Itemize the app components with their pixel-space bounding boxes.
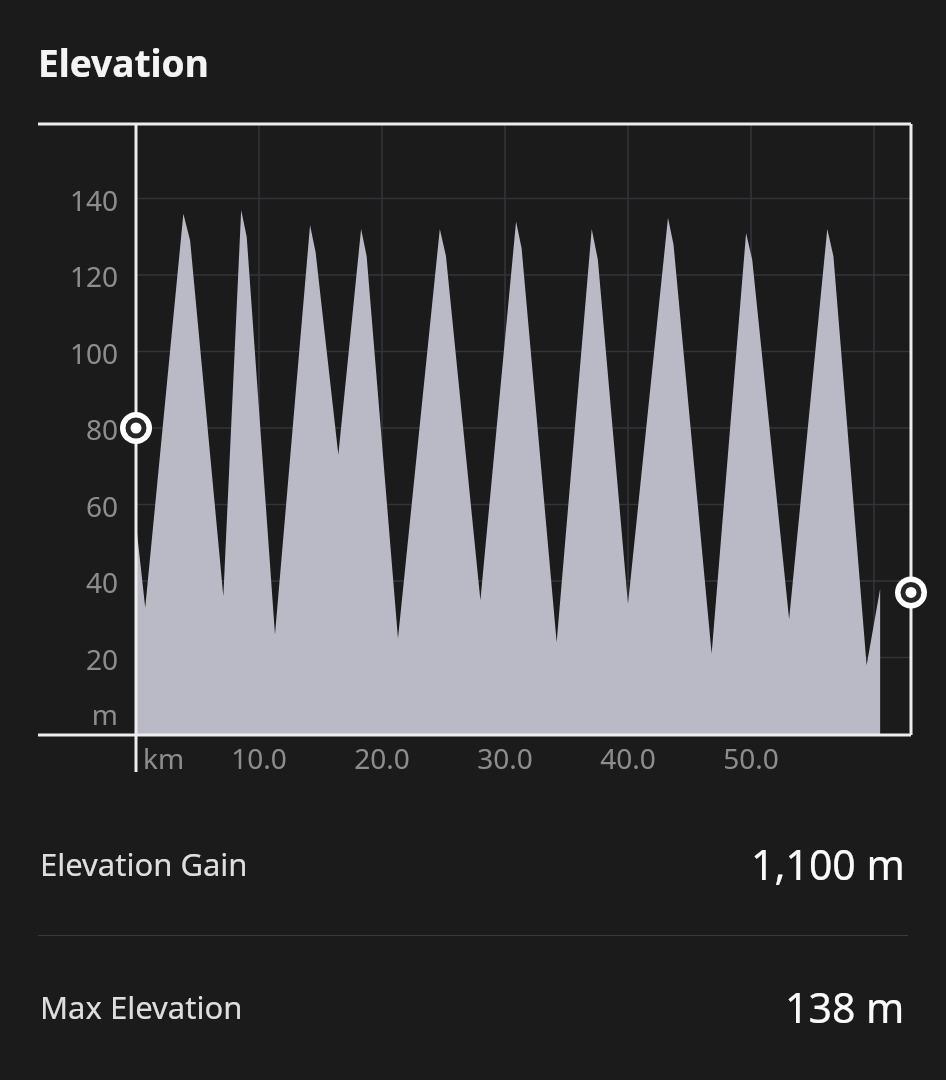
- staticText: 10.0: [199, 739, 319, 777]
- staticText: km: [143, 739, 185, 777]
- staticText: 120: [40, 257, 118, 295]
- staticText: 50.0: [691, 739, 811, 777]
- button[interactable]: Elevation Gain: [0, 793, 946, 935]
- staticText: 20: [40, 640, 118, 678]
- staticText: 30.0: [445, 739, 565, 777]
- staticText: 40.0: [568, 739, 688, 777]
- staticText: 40: [40, 563, 118, 601]
- staticText: m: [40, 695, 118, 733]
- staticText: 140: [40, 181, 118, 219]
- staticText: Elevation Gain: [40, 843, 248, 885]
- staticText: 100: [40, 334, 118, 372]
- staticText: 20.0: [322, 739, 442, 777]
- staticText: 138 m: [785, 979, 905, 1035]
- staticText: Elevation: [38, 37, 209, 87]
- staticText: 80: [40, 410, 118, 448]
- staticText: 60: [40, 487, 118, 525]
- button[interactable]: Max Elevation: [0, 936, 946, 1078]
- staticText: 1,100 m: [751, 836, 905, 892]
- staticText: Max Elevation: [40, 986, 243, 1028]
